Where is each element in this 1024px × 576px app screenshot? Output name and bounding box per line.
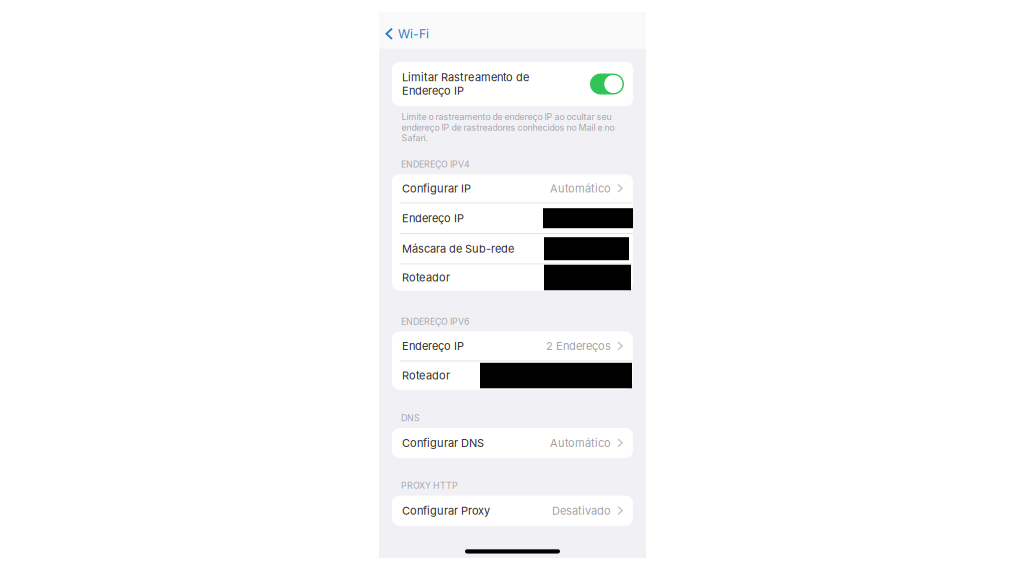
button[interactable]: Configurar IP: [392, 174, 633, 202]
staticText: Roteador: [402, 271, 450, 284]
staticText: Configurar DNS: [402, 436, 484, 450]
staticText: Endereço IP: [402, 211, 464, 225]
staticText: Wi-Fi: [398, 26, 429, 41]
staticText: 2 Endereços: [546, 339, 611, 353]
staticText: Desativado: [552, 504, 611, 517]
button[interactable]: Wi-Fi: [379, 12, 439, 48]
staticText: ENDEREÇO IPV4: [401, 159, 470, 169]
staticText: Roteador: [402, 369, 450, 382]
staticText: Limitar Rastreamento de Endereço IP: [402, 71, 529, 97]
staticText: Endereço IP: [402, 339, 464, 353]
staticText: DNS: [401, 413, 420, 423]
staticText: Limite o rastreamento de endereço IP ao …: [401, 111, 614, 143]
button[interactable]: Configurar DNS: [392, 428, 633, 458]
staticText: PROXY HTTP: [401, 480, 458, 491]
staticText: Configurar Proxy: [402, 504, 490, 517]
staticText: Automático: [550, 182, 611, 195]
button[interactable]: Endereço IP: [392, 331, 633, 360]
staticText: ENDEREÇO IPV6: [401, 316, 469, 327]
staticText: Configurar IP: [402, 182, 471, 195]
button[interactable]: Configurar Proxy: [392, 496, 633, 526]
staticText: Automático: [550, 436, 611, 450]
button[interactable]: Limitar Rastreamento de Endereço IP: [590, 73, 624, 94]
staticText: Máscara de Sub-rede: [402, 242, 514, 255]
